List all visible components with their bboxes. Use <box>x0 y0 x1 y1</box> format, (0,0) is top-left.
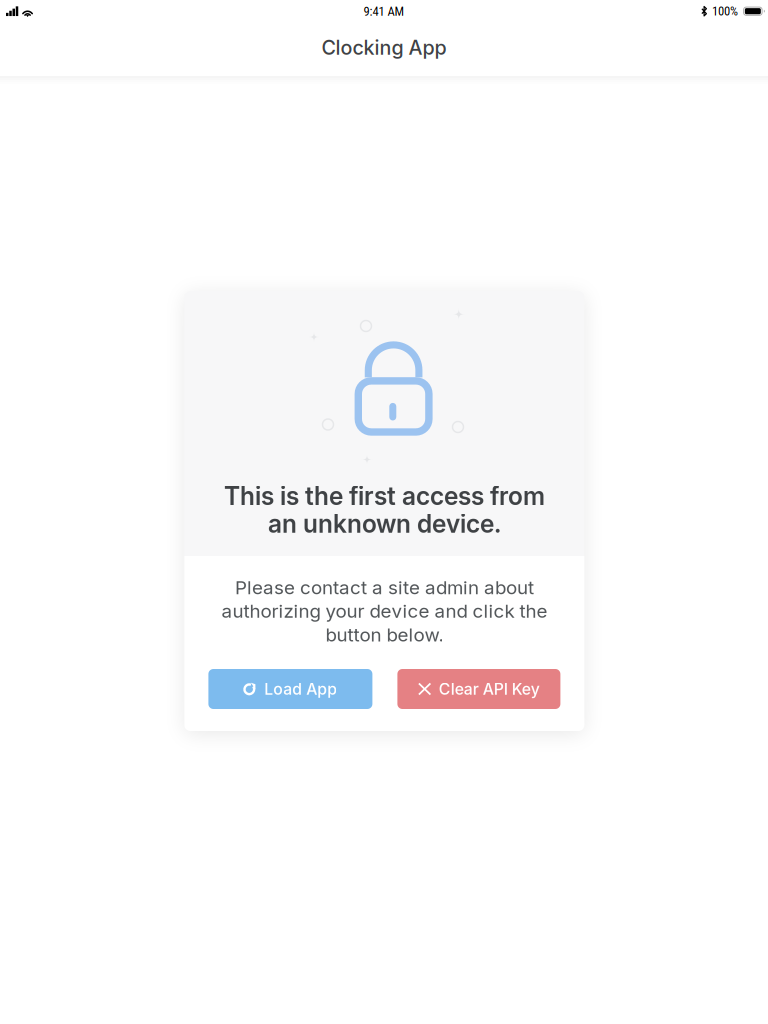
button[interactable]: Load App <box>208 669 372 709</box>
staticText: authorizing your device and click the <box>221 600 547 622</box>
staticText: button below. <box>325 623 443 646</box>
staticText: Please contact a site admin about <box>235 576 534 599</box>
button[interactable]: Clear API Key <box>397 669 560 709</box>
staticText: an unknown device. <box>268 509 501 539</box>
staticText: Load App <box>264 679 337 698</box>
staticText: 9:41 AM <box>363 4 404 19</box>
staticText: This is the first access from <box>224 481 545 511</box>
staticText: Clocking App <box>321 36 446 59</box>
staticText: 100% <box>712 4 738 19</box>
staticText: Clear API Key <box>439 679 540 698</box>
